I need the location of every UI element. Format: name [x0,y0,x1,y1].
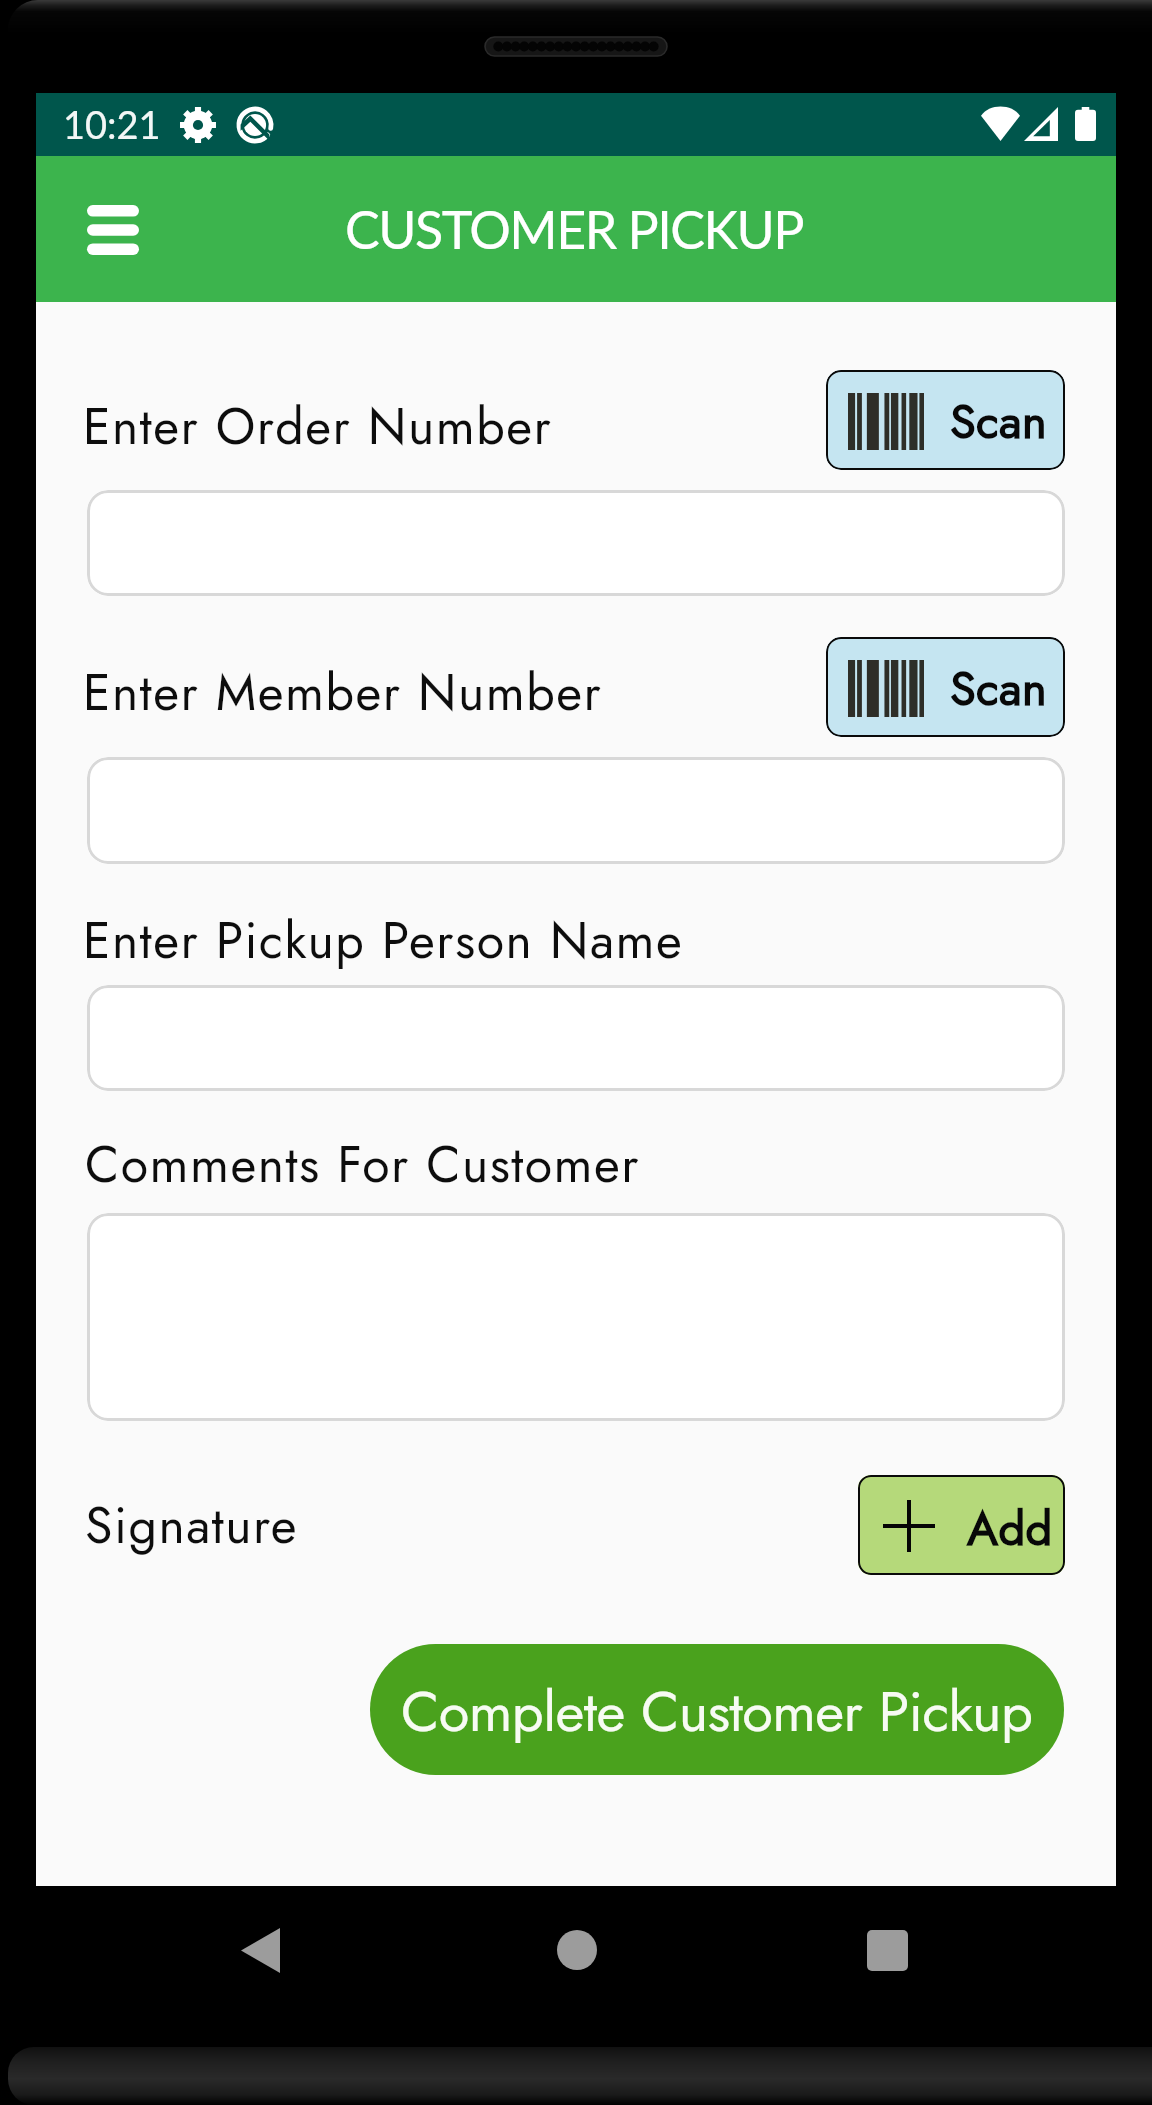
button[interactable]: Open navigation drawer [68,185,158,275]
button[interactable]: Text input field [87,490,1065,596]
button[interactable]: Complete Customer Pickup [370,1644,1064,1775]
staticText: Signature [85,1489,299,1561]
button[interactable]: Recent apps [822,1900,952,2000]
staticText: Add [967,1495,1053,1563]
staticText: Scan [950,388,1048,456]
staticText: Enter Pickup Person Name [83,904,684,976]
button[interactable]: Text input field [87,985,1065,1091]
staticText: Scan [950,655,1048,723]
staticText: Comments For Customer [85,1128,640,1200]
button[interactable]: Back [196,1900,326,2000]
staticText: 10:21 [63,101,161,147]
button[interactable]: Scan [826,637,1065,737]
staticText: CUSTOMER PICKUP [345,198,804,260]
staticText: Complete Customer Pickup [401,1671,1033,1752]
button[interactable]: Text input field [87,1213,1065,1421]
staticText: Enter Member Number [83,656,603,728]
button[interactable]: Scan [826,370,1065,470]
button[interactable]: Text input field [87,757,1065,864]
button[interactable]: Add [858,1475,1065,1575]
staticText: Enter Order Number [83,390,553,462]
button[interactable]: Home [512,1900,642,2000]
